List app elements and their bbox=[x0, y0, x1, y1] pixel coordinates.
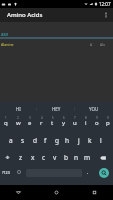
staticText: z bbox=[19, 153, 23, 162]
staticText: b bbox=[64, 153, 68, 162]
button[interactable]: g bbox=[51, 132, 62, 149]
staticText: a bbox=[9, 136, 13, 145]
button[interactable]: b bbox=[60, 149, 71, 166]
staticText: p bbox=[106, 119, 110, 127]
button[interactable]: s bbox=[17, 132, 29, 149]
button[interactable]: 9 bbox=[91, 115, 102, 132]
staticText: 8 bbox=[85, 116, 87, 120]
button[interactable]: Shift bbox=[0, 149, 15, 166]
button[interactable]: 2 bbox=[12, 115, 24, 132]
button[interactable]: Home bbox=[37, 185, 75, 200]
button[interactable]: ?123 bbox=[0, 166, 12, 178]
staticText: r bbox=[40, 119, 43, 127]
staticText: d bbox=[33, 136, 37, 145]
staticText: 2 bbox=[17, 116, 19, 120]
staticText: k bbox=[88, 136, 92, 145]
staticText: 3 bbox=[29, 116, 31, 120]
staticText: Alanine bbox=[1, 42, 14, 47]
staticText: g bbox=[55, 136, 59, 145]
button[interactable]: 0 bbox=[102, 115, 113, 132]
button[interactable]: j bbox=[73, 132, 84, 149]
button[interactable]: YOU bbox=[75, 102, 113, 115]
button[interactable]: Backspace bbox=[93, 149, 113, 166]
staticText: HEY bbox=[52, 106, 61, 112]
button[interactable]: c bbox=[38, 149, 49, 166]
button[interactable]: n bbox=[71, 149, 82, 166]
button[interactable]: a bbox=[5, 132, 17, 149]
staticText: l bbox=[100, 136, 102, 145]
staticText: m bbox=[84, 153, 91, 162]
staticText: A bbox=[90, 42, 93, 47]
button[interactable]: k bbox=[84, 132, 95, 149]
button[interactable]: 3 bbox=[24, 115, 36, 132]
staticText: v bbox=[53, 153, 57, 162]
button[interactable]: 4 bbox=[36, 115, 47, 132]
staticText: 12:07 bbox=[99, 1, 111, 7]
button[interactable]: f bbox=[40, 132, 51, 149]
button[interactable]: h bbox=[62, 132, 73, 149]
button[interactable]: Recents bbox=[75, 185, 113, 200]
button[interactable]: More options bbox=[99, 8, 113, 22]
staticText: asv bbox=[1, 31, 8, 37]
staticText: u bbox=[73, 119, 77, 127]
button[interactable]: Search bbox=[99, 168, 109, 178]
staticText: y bbox=[62, 119, 66, 127]
staticText: j bbox=[78, 136, 80, 145]
staticText: s bbox=[21, 136, 25, 145]
staticText: 1 bbox=[5, 116, 7, 120]
staticText: 4 bbox=[41, 116, 43, 120]
button[interactable]: v bbox=[49, 149, 60, 166]
button[interactable]: 1 bbox=[0, 115, 12, 132]
button[interactable]: HI bbox=[0, 102, 37, 115]
staticText: x bbox=[31, 153, 35, 162]
staticText: h bbox=[65, 136, 70, 145]
staticText: 5 bbox=[52, 116, 54, 120]
staticText: e bbox=[28, 119, 32, 127]
staticText: 0 bbox=[107, 116, 109, 120]
staticText: ?123 bbox=[2, 170, 10, 175]
button[interactable]: d bbox=[29, 132, 40, 149]
staticText: YOU bbox=[89, 106, 99, 112]
staticText: o bbox=[95, 119, 99, 127]
button[interactable]: 7 bbox=[69, 115, 80, 132]
button[interactable]: z bbox=[15, 149, 27, 166]
staticText: Amino Acids bbox=[7, 11, 43, 19]
button[interactable]: x bbox=[27, 149, 38, 166]
button[interactable]: m bbox=[82, 149, 93, 166]
button[interactable]: Emoji bbox=[12, 166, 26, 178]
staticText: HI bbox=[16, 106, 21, 112]
staticText: c bbox=[42, 153, 46, 162]
button[interactable]: 5 bbox=[47, 115, 58, 132]
staticText: q bbox=[4, 119, 8, 127]
button[interactable]: 6 bbox=[58, 115, 69, 132]
button[interactable]: Alanine bbox=[0, 39, 113, 50]
staticText: w bbox=[16, 119, 21, 127]
staticText: i bbox=[85, 119, 87, 127]
button[interactable]: 8 bbox=[80, 115, 91, 132]
staticText: n bbox=[74, 153, 79, 162]
staticText: 6 bbox=[63, 116, 65, 120]
button[interactable]: HEY bbox=[37, 102, 75, 115]
button[interactable]: Back bbox=[0, 185, 37, 200]
staticText: 7 bbox=[74, 116, 76, 120]
staticText: 9 bbox=[96, 116, 98, 120]
staticText: f bbox=[44, 136, 47, 145]
staticText: . bbox=[87, 169, 89, 176]
button[interactable]: . bbox=[82, 166, 94, 178]
staticText: t bbox=[51, 119, 54, 127]
staticText: Ala bbox=[100, 42, 105, 47]
button[interactable]: l bbox=[95, 132, 106, 149]
